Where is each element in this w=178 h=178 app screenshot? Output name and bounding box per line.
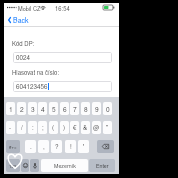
staticText: 16:54 <box>55 4 70 12</box>
staticText: Enter <box>96 162 109 170</box>
button[interactable]: ; <box>38 121 47 134</box>
staticText: 123 <box>9 163 17 169</box>
button[interactable]: ' <box>78 140 89 153</box>
staticText: 6 <box>63 104 67 113</box>
button[interactable]: : <box>28 121 37 134</box>
staticText: / <box>21 123 23 132</box>
button[interactable]: ? <box>51 140 62 153</box>
staticText: Kód DP: <box>12 39 35 48</box>
button[interactable]: . <box>25 140 36 153</box>
button[interactable]: / <box>17 121 26 134</box>
button[interactable]: 123 <box>6 159 20 172</box>
staticText: " <box>106 123 109 132</box>
staticText: 5 <box>52 104 56 113</box>
button[interactable]: 7 <box>70 102 79 115</box>
button[interactable]: ! <box>65 140 76 153</box>
staticText: ) <box>63 123 66 132</box>
button[interactable]: 604123456 <box>13 81 112 92</box>
button[interactable]: Enter <box>89 159 115 172</box>
staticText: Hlasovat na číslo: <box>12 68 60 77</box>
button[interactable]: 4 <box>38 102 47 115</box>
staticText: ' <box>83 142 85 151</box>
staticText: @ <box>93 123 100 132</box>
staticText: 1 <box>9 104 13 113</box>
staticText: 9 <box>95 104 99 113</box>
button[interactable]: 9 <box>92 102 101 115</box>
button[interactable]: - <box>6 121 15 134</box>
staticText: € <box>73 123 77 132</box>
staticText: Mezerník <box>54 162 76 170</box>
button[interactable]: 2 <box>17 102 26 115</box>
button[interactable]: Mezerník <box>41 159 88 172</box>
button[interactable]: ( <box>49 121 58 134</box>
button[interactable]: Dictate <box>30 159 39 172</box>
button[interactable]: Back <box>4 13 119 27</box>
staticText: 3 <box>31 104 35 113</box>
staticText: 2 <box>20 104 24 113</box>
button[interactable]: #+= <box>6 140 20 153</box>
staticText: 7 <box>73 104 77 113</box>
button[interactable]: € <box>70 121 79 134</box>
staticText: - <box>9 123 12 132</box>
button[interactable]: 5 <box>49 102 58 115</box>
button[interactable]: " <box>103 121 112 134</box>
button[interactable]: Emoji <box>21 159 29 172</box>
staticText: 604123456 <box>16 82 48 91</box>
button[interactable]: , <box>38 140 49 153</box>
staticText: & <box>83 123 88 132</box>
staticText: Back <box>13 15 29 25</box>
staticText: ( <box>52 123 55 132</box>
staticText: Mobil CZ <box>18 5 41 13</box>
button[interactable]: 0 <box>103 102 112 115</box>
staticText: ; <box>42 123 44 132</box>
button[interactable]: 3 <box>28 102 37 115</box>
staticText: : <box>32 123 34 132</box>
staticText: #+= <box>9 144 17 150</box>
staticText: 8 <box>84 104 88 113</box>
button[interactable]: 0024 <box>13 52 112 63</box>
staticText: 4 <box>41 104 45 113</box>
button[interactable]: 8 <box>81 102 90 115</box>
button[interactable]: 6 <box>60 102 69 115</box>
staticText: 0024 <box>16 53 31 62</box>
staticText: ! <box>70 142 72 151</box>
button[interactable]: & <box>81 121 90 134</box>
staticText: ? <box>55 142 59 151</box>
button[interactable]: 1 <box>6 102 15 115</box>
staticText: . <box>30 142 32 151</box>
staticText: 0 <box>106 104 110 113</box>
button[interactable]: ) <box>60 121 69 134</box>
button[interactable]: @ <box>92 121 101 134</box>
staticText: , <box>43 142 45 151</box>
button[interactable]: Backspace <box>97 140 114 153</box>
